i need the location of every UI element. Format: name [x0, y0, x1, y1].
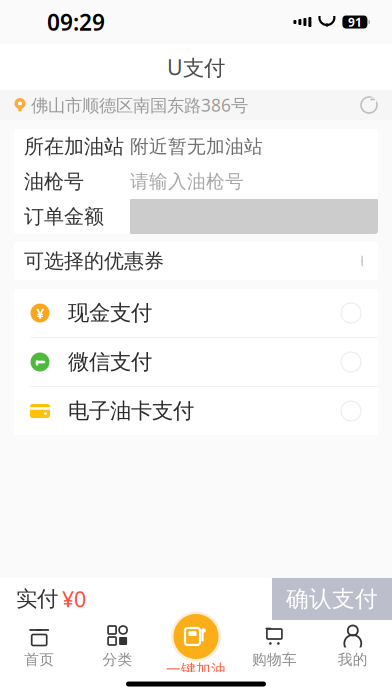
staticText: 我的	[338, 650, 368, 668]
staticText: 订单金额	[24, 204, 104, 229]
button[interactable]: 电子油卡支付	[14, 387, 378, 435]
staticText: 请输入油枪号	[130, 170, 244, 193]
button[interactable]: 我的	[314, 620, 392, 672]
button[interactable]: 一键加油	[157, 620, 235, 672]
staticText: ¥0	[62, 585, 86, 613]
staticText: 油枪号	[24, 169, 84, 194]
staticText: 所在加油站	[24, 134, 124, 159]
button[interactable]: 购物车	[235, 620, 314, 672]
staticText: 09:29	[47, 7, 105, 37]
staticText: 实付	[16, 586, 58, 612]
button[interactable]: 微信支付	[14, 338, 378, 386]
staticText: 一键加油	[166, 660, 226, 678]
staticText: 附近暂无加油站	[130, 135, 263, 158]
button[interactable]: 首页	[0, 620, 78, 672]
staticText: 微信支付	[68, 349, 152, 375]
button[interactable]: 所在加油站	[14, 129, 378, 164]
button[interactable]: 可选择的优惠券	[0, 234, 392, 280]
button[interactable]: 油枪号	[14, 164, 378, 199]
button[interactable]: 佛山市顺德区南国东路386号	[0, 90, 392, 120]
staticText: 确认支付	[286, 585, 378, 613]
staticText: 现金支付	[68, 300, 152, 326]
staticText: 分类	[103, 650, 133, 668]
staticText: ¥	[36, 303, 44, 323]
staticText: 首页	[24, 650, 54, 668]
button[interactable]: 确认支付	[272, 578, 392, 620]
button[interactable]: 分类	[78, 620, 157, 672]
staticText: 91	[348, 14, 362, 30]
staticText: 电子油卡支付	[68, 398, 194, 424]
staticText: 佛山市顺德区南国东路386号	[31, 93, 248, 116]
staticText: 可选择的优惠券	[24, 249, 164, 273]
button[interactable]: ¥	[14, 289, 378, 337]
staticText: 购物车	[252, 650, 297, 668]
staticText: U支付	[167, 53, 225, 81]
